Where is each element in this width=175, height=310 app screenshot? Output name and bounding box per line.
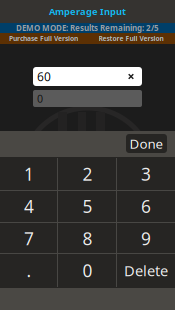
button[interactable]: Purchase Full Version	[0, 0, 87, 11]
staticText: 9	[141, 227, 151, 250]
button[interactable]: 8	[0, 0, 59, 32]
staticText: 7	[24, 227, 34, 250]
staticText: 0	[82, 259, 92, 282]
button[interactable]: 9	[0, 0, 58, 32]
button[interactable]: 5	[0, 0, 59, 32]
staticText: Purchase Full Version	[9, 34, 78, 43]
staticText: 2	[82, 162, 92, 185]
staticText: 4	[24, 195, 34, 218]
staticText: 5	[82, 195, 92, 218]
staticText: Delete	[124, 261, 168, 280]
staticText: Amperage Input	[49, 5, 126, 18]
button[interactable]: 6	[0, 0, 58, 32]
staticText: 8	[82, 227, 92, 250]
staticText: 6	[141, 195, 151, 218]
staticText: Done	[129, 135, 163, 152]
button[interactable]: 2	[0, 0, 59, 32]
staticText: 3	[141, 162, 151, 185]
button[interactable]: Restore Full Version	[0, 0, 88, 11]
button[interactable]: 0	[0, 0, 59, 32]
staticText: 1	[24, 162, 34, 185]
button[interactable]: 3	[0, 0, 58, 32]
button[interactable]: 4	[0, 0, 58, 32]
staticText: DEMO MODE: Results Remaining: 2/5	[16, 23, 159, 33]
staticText: 0	[37, 91, 43, 106]
staticText: 60	[37, 68, 51, 84]
staticText: Restore Full Version	[98, 34, 163, 43]
button[interactable]: Delete	[0, 0, 58, 32]
button[interactable]: 7	[0, 0, 58, 32]
button[interactable]: .	[0, 0, 58, 32]
button[interactable]: 1	[0, 0, 58, 32]
staticText: .	[26, 259, 31, 282]
